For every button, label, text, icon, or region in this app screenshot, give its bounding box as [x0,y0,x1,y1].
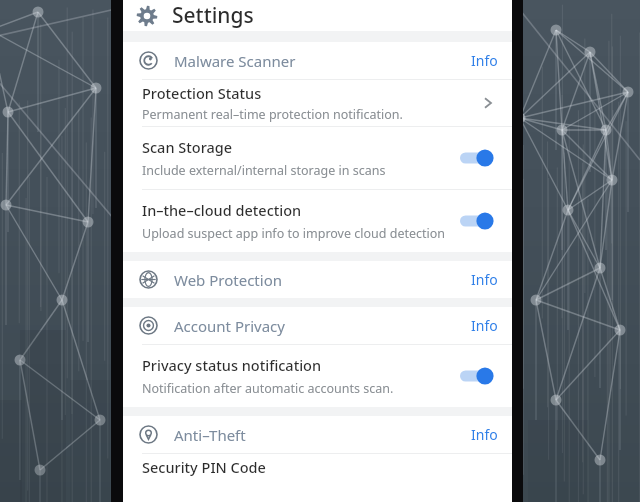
staticText: Web Protection [174,270,282,290]
button[interactable]: Info [457,310,512,341]
staticText: In–the–cloud detection [142,200,302,220]
staticText: Info [471,425,498,444]
button[interactable]: Info [457,264,512,295]
button[interactable]: Anti–Theft [123,416,512,453]
staticText: Scan Storage [142,137,233,157]
staticText: Permanent real–time protection notificat… [142,106,403,123]
staticText: Info [471,270,498,289]
button[interactable]: Settings [123,0,512,31]
staticText: Notification after automatic accounts sc… [142,380,394,397]
button[interactable]: Info [457,419,512,450]
staticText: Account Privacy [174,316,285,336]
staticText: Info [471,316,498,335]
button[interactable]: Security PIN Code [123,454,512,484]
staticText: Upload suspect app info to improve cloud… [142,225,446,242]
button[interactable]: Web Protection [123,261,512,298]
button[interactable]: In–the–cloud detection [123,190,512,252]
other: Open [478,91,498,115]
button[interactable]: Scan Storage [123,127,512,189]
staticText: Include external/internal storage in sca… [142,162,386,179]
button[interactable]: Toggle Scan Storage [459,145,495,171]
button[interactable]: Toggle In–the–cloud detection [459,208,495,234]
button[interactable]: Protection Status [123,80,512,126]
button[interactable]: Toggle Privacy status notification [459,363,495,389]
staticText: Security PIN Code [142,457,266,477]
staticText: Info [471,51,498,70]
staticText: Malware Scanner [174,51,296,71]
button[interactable]: Malware Scanner [123,42,512,79]
other: Settings [136,5,158,27]
button[interactable]: Privacy status notification [123,345,512,407]
button[interactable]: Info [457,45,512,76]
staticText: Protection Status [142,83,262,103]
button[interactable]: Account Privacy [123,307,512,344]
staticText: Anti–Theft [174,425,246,445]
staticText: Settings [172,1,254,30]
staticText: Privacy status notification [142,355,322,375]
